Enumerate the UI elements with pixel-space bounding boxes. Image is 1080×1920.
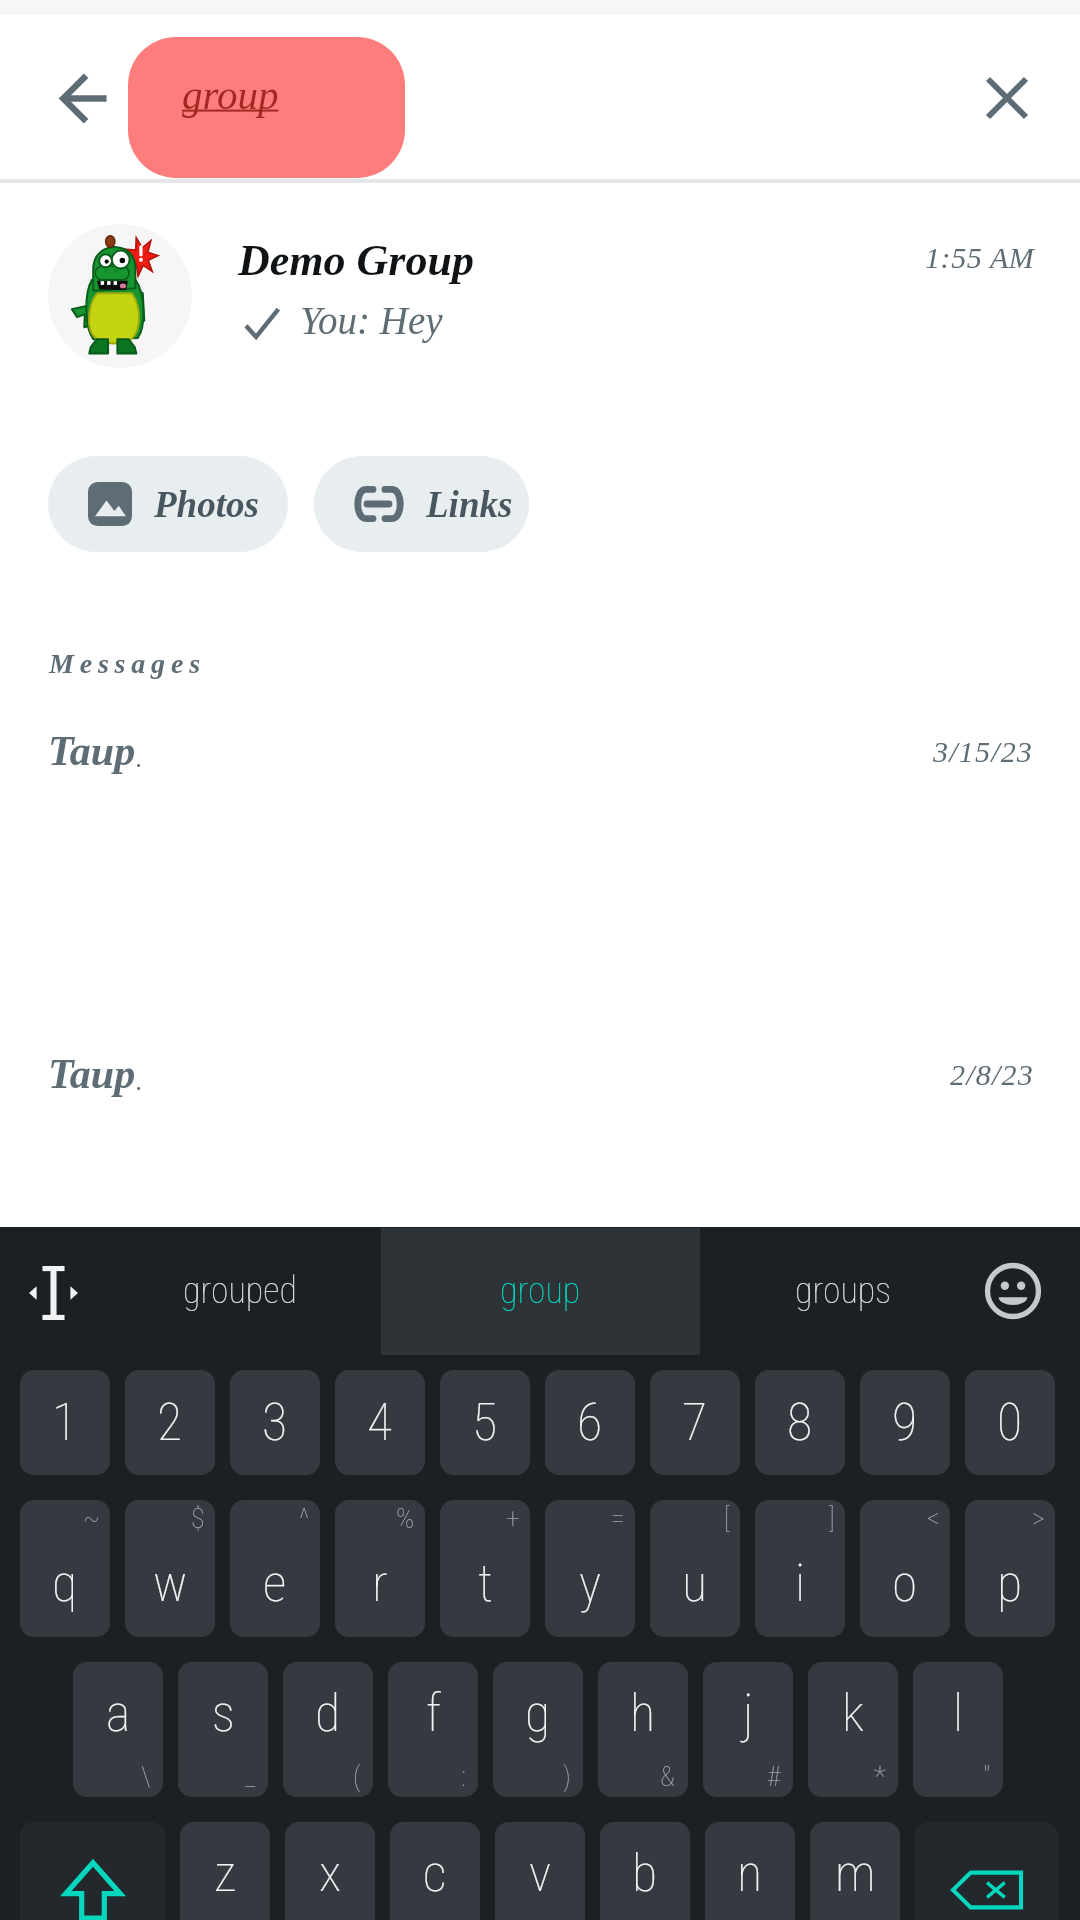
button[interactable]: Links: [314, 456, 529, 552]
staticText: :: [461, 1760, 466, 1793]
button[interactable]: grouped: [110, 1235, 370, 1347]
staticText: n: [737, 1843, 763, 1904]
button[interactable]: group: [128, 37, 405, 178]
staticText: 3: [262, 1392, 288, 1453]
button[interactable]: (: [283, 1662, 373, 1797]
staticText: +: [506, 1502, 520, 1535]
button[interactable]: 8: [755, 1370, 845, 1475]
button[interactable]: Backspace: [915, 1822, 1058, 1920]
staticText: 4: [367, 1392, 393, 1453]
staticText: 1:55 AM: [925, 241, 1035, 274]
button[interactable]: +: [440, 1500, 530, 1637]
staticText: >: [1032, 1502, 1045, 1535]
button[interactable]: Close: [969, 60, 1045, 136]
staticText: o: [892, 1553, 918, 1614]
button[interactable]: ;: [180, 1822, 270, 1920]
button[interactable]: ^: [230, 1500, 320, 1637]
staticText: u: [682, 1553, 708, 1614]
button[interactable]: Demo Group: [0, 204, 1080, 388]
staticText: =: [611, 1502, 625, 1535]
button[interactable]: \: [73, 1662, 163, 1797]
staticText: 2/8/23: [950, 1058, 1034, 1091]
button[interactable]: 0: [965, 1370, 1055, 1475]
button[interactable]: 7: [650, 1370, 740, 1475]
button[interactable]: Shift: [20, 1822, 165, 1920]
button[interactable]: Move cursor: [14, 1253, 93, 1332]
button[interactable]: 1: [20, 1370, 110, 1475]
staticText: z: [214, 1843, 237, 1904]
button[interactable]: _: [178, 1662, 268, 1797]
staticText: 1: [52, 1392, 78, 1453]
staticText: %: [396, 1502, 415, 1535]
staticText: v: [529, 1843, 552, 1904]
staticText: 7: [682, 1392, 708, 1453]
button[interactable]: |: [495, 1822, 585, 1920]
button[interactable]: 6: [545, 1370, 635, 1475]
staticText: 2: [157, 1392, 183, 1453]
button[interactable]: $: [125, 1500, 215, 1637]
button[interactable]: 3: [230, 1370, 320, 1475]
button[interactable]: ": [913, 1662, 1003, 1797]
staticText: r: [372, 1553, 388, 1614]
staticText: Links: [426, 484, 513, 525]
button[interactable]: ~: [20, 1500, 110, 1637]
button[interactable]: Emoji: [973, 1251, 1053, 1331]
staticText: p: [997, 1553, 1023, 1614]
staticText: a: [106, 1683, 131, 1744]
staticText: Demo Group: [238, 236, 474, 285]
button[interactable]: #: [703, 1662, 793, 1797]
button[interactable]: ?: [390, 1822, 480, 1920]
button[interactable]: group: [381, 1235, 700, 1347]
button[interactable]: &: [598, 1662, 688, 1797]
staticText: grouped: [183, 1270, 297, 1312]
staticText: (: [353, 1760, 361, 1793]
button[interactable]: 5: [440, 1370, 530, 1475]
staticText: i: [795, 1553, 806, 1614]
button[interactable]: :: [388, 1662, 478, 1797]
button[interactable]: groups: [713, 1235, 973, 1347]
staticText: _: [245, 1760, 256, 1793]
staticText: .: [136, 1067, 143, 1096]
button[interactable]: >: [965, 1500, 1055, 1637]
button[interactable]: ): [493, 1662, 583, 1797]
button[interactable]: =: [545, 1500, 635, 1637]
staticText: f: [426, 1683, 441, 1744]
button[interactable]: 9: [860, 1370, 950, 1475]
staticText: $: [191, 1502, 205, 1535]
staticText: 6: [577, 1392, 603, 1453]
staticText: group: [182, 72, 279, 117]
button[interactable]: 4: [335, 1370, 425, 1475]
button[interactable]: Photos: [48, 456, 288, 552]
staticText: 9: [892, 1392, 918, 1453]
button[interactable]: /: [285, 1822, 375, 1920]
staticText: y: [579, 1553, 601, 1614]
staticText: group: [500, 1270, 581, 1312]
staticText: groups: [795, 1270, 892, 1312]
staticText: t: [478, 1553, 493, 1614]
button[interactable]: Taup: [0, 726, 1080, 812]
staticText: w: [153, 1553, 188, 1614]
staticText: *: [874, 1760, 886, 1793]
button[interactable]: [: [650, 1500, 740, 1637]
button[interactable]: Taup: [0, 1049, 1080, 1135]
staticText: ^: [299, 1502, 310, 1535]
staticText: ): [563, 1760, 571, 1793]
staticText: l: [953, 1683, 964, 1744]
staticText: Taup: [48, 728, 136, 775]
button[interactable]: !: [600, 1822, 690, 1920]
staticText: m: [835, 1843, 876, 1904]
button[interactable]: ]: [755, 1500, 845, 1637]
button[interactable]: Back: [46, 61, 121, 136]
staticText: h: [630, 1683, 656, 1744]
staticText: Messages: [49, 648, 206, 679]
button[interactable]: 2: [125, 1370, 215, 1475]
button[interactable]: ,: [810, 1822, 900, 1920]
staticText: b: [632, 1843, 658, 1904]
button[interactable]: <: [860, 1500, 950, 1637]
button[interactable]: °: [705, 1822, 795, 1920]
staticText: 3/15/23: [933, 735, 1034, 768]
staticText: j: [743, 1683, 754, 1744]
button[interactable]: *: [808, 1662, 898, 1797]
staticText: Taup: [48, 1051, 136, 1098]
button[interactable]: %: [335, 1500, 425, 1637]
